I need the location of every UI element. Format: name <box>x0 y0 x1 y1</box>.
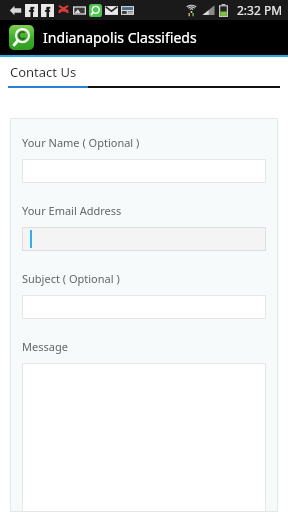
staticText: 2:32 PM <box>237 2 283 18</box>
button[interactable] <box>22 295 266 319</box>
staticText: Your Email Address <box>22 203 122 218</box>
button[interactable] <box>22 159 266 183</box>
staticText: Contact Us <box>10 63 77 81</box>
button[interactable] <box>22 227 266 251</box>
button[interactable] <box>22 363 266 512</box>
other: App logo <box>9 25 34 50</box>
button[interactable]: Contact Us <box>0 57 91 86</box>
staticText: Indianapolis Classifieds <box>43 28 197 47</box>
staticText: Message <box>22 339 68 354</box>
staticText: Your Name ( Optional ) <box>22 135 140 150</box>
button[interactable]: App logo <box>0 20 288 55</box>
staticText: Subject ( Optional ) <box>22 271 120 286</box>
